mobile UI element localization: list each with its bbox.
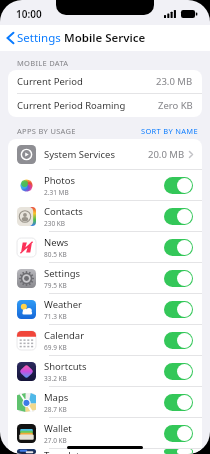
button[interactable]: Toggle mobile data	[164, 270, 193, 287]
button[interactable]: Toggle mobile data	[164, 332, 193, 349]
button[interactable]: Toggle mobile data	[164, 425, 193, 442]
button[interactable]: Maps	[8, 387, 202, 417]
staticText: Mobile Service	[64, 30, 146, 46]
button[interactable]: Calendar	[8, 325, 202, 355]
staticText: Zero KB	[158, 99, 193, 112]
staticText: 80.5 KB	[44, 250, 67, 259]
staticText: APPS BY USAGE	[17, 126, 76, 136]
button[interactable]: Translate	[8, 449, 202, 454]
staticText: Photos	[44, 174, 76, 187]
staticText: Shortcuts	[44, 360, 87, 373]
staticText: Settings	[17, 30, 61, 46]
button[interactable]: SORT BY NAME	[141, 126, 210, 139]
staticText: MOBILE DATA	[17, 58, 69, 68]
button[interactable]: Shortcuts	[8, 356, 202, 386]
button[interactable]: Settings	[8, 263, 202, 293]
staticText: Calendar	[44, 329, 85, 342]
button[interactable]: Current Period	[8, 70, 202, 93]
staticText: Wallet	[44, 422, 72, 435]
button[interactable]: News	[8, 232, 202, 262]
button[interactable]: Toggle mobile data	[164, 363, 193, 380]
button[interactable]: Current Period Roaming	[8, 94, 202, 117]
staticText: Translate	[44, 449, 85, 454]
button[interactable]: Toggle mobile data	[164, 394, 193, 411]
button[interactable]: Contacts	[8, 201, 202, 231]
staticText: 230 KB	[44, 219, 66, 228]
button[interactable]: Wallet	[8, 418, 202, 448]
staticText: News	[44, 236, 69, 249]
button[interactable]: Photos	[8, 170, 202, 200]
staticText: 79.5 KB	[44, 281, 67, 290]
button[interactable]: Toggle mobile data	[164, 208, 193, 225]
staticText: Weather	[44, 298, 82, 311]
button[interactable]: Weather	[8, 294, 202, 324]
button[interactable]: Toggle mobile data	[164, 177, 193, 194]
staticText: 28.7 KB	[44, 405, 67, 414]
staticText: System Services	[44, 148, 115, 161]
staticText: 20.0 MB	[148, 148, 185, 161]
button[interactable]: Toggle mobile data	[164, 449, 193, 454]
button[interactable]: Toggle mobile data	[164, 239, 193, 256]
staticText: 27.0 KB	[44, 436, 67, 445]
staticText: Contacts	[44, 205, 83, 218]
button[interactable]: System Services	[8, 139, 202, 169]
staticText: Settings	[44, 267, 81, 280]
button[interactable]: Settings	[0, 25, 67, 51]
staticText: 69.9 KB	[44, 343, 67, 352]
staticText: 71.3 KB	[44, 312, 67, 321]
staticText: SORT BY NAME	[141, 126, 198, 136]
button[interactable]: Toggle mobile data	[164, 301, 193, 318]
staticText: Current Period Roaming	[17, 99, 126, 112]
staticText: 10:00	[16, 7, 42, 21]
staticText: 23.0 MB	[156, 75, 193, 88]
staticText: 2.31 MB	[44, 188, 69, 197]
staticText: Current Period	[17, 75, 83, 88]
staticText: 33.2 KB	[44, 374, 67, 383]
staticText: Maps	[44, 391, 69, 404]
